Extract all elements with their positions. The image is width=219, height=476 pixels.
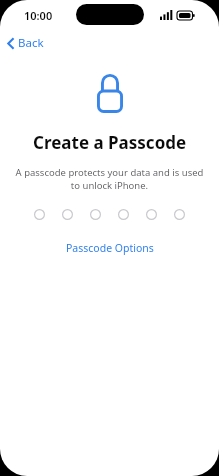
button[interactable]: Passcode Options xyxy=(58,238,162,258)
button[interactable]: Back xyxy=(4,32,47,54)
staticText: 10:00 xyxy=(24,8,53,23)
staticText: Back xyxy=(18,35,44,51)
staticText: Passcode Options xyxy=(66,241,154,255)
staticText: A passcode protects your data and is use… xyxy=(14,166,205,192)
staticText: Create a Passcode xyxy=(33,131,187,154)
